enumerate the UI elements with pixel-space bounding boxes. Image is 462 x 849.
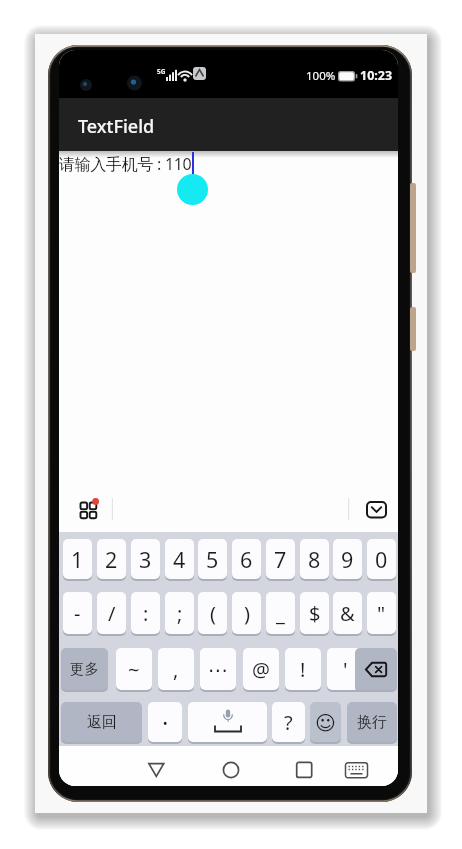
- button[interactable]: 3: [131, 539, 160, 579]
- button[interactable]: [177, 174, 208, 205]
- button[interactable]: (: [198, 592, 227, 634]
- staticText: @: [252, 656, 270, 683]
- staticText: 8: [308, 545, 321, 574]
- staticText: _: [276, 600, 285, 627]
- button[interactable]: 8: [300, 539, 329, 579]
- button[interactable]: /: [97, 592, 126, 634]
- staticText: 5: [206, 545, 219, 574]
- button[interactable]: 9: [333, 539, 362, 579]
- button[interactable]: 0: [367, 539, 396, 579]
- button[interactable]: 换行: [347, 702, 397, 742]
- staticText: 6: [240, 545, 253, 574]
- button[interactable]: [211, 750, 251, 786]
- button[interactable]: _: [266, 592, 295, 634]
- staticText: (: [210, 600, 216, 627]
- staticText: 返回: [87, 713, 117, 732]
- button[interactable]: ☺: [310, 702, 341, 742]
- staticText: 0: [375, 545, 388, 574]
- staticText: ⋯: [208, 658, 228, 681]
- button[interactable]: 1: [63, 539, 92, 579]
- staticText: ☺: [315, 711, 336, 734]
- button[interactable]: 4: [165, 539, 194, 579]
- button[interactable]: !: [285, 648, 321, 690]
- staticText: ~: [128, 656, 140, 683]
- staticText: ?: [284, 709, 293, 736]
- staticText: 1: [71, 545, 84, 574]
- button[interactable]: [188, 702, 267, 742]
- staticText: -: [74, 600, 81, 627]
- button[interactable]: &: [333, 592, 362, 634]
- staticText: 3: [139, 545, 152, 574]
- button[interactable]: ': [327, 648, 363, 690]
- staticText: 5G: [157, 67, 166, 76]
- staticText: 4: [173, 545, 186, 574]
- staticText: 9: [341, 545, 354, 574]
- staticText: :: [143, 600, 149, 627]
- staticText: 10:23: [360, 67, 393, 84]
- staticText: ": [377, 600, 386, 627]
- staticText: 100%: [306, 68, 336, 84]
- button[interactable]: -: [63, 592, 92, 634]
- button[interactable]: @: [243, 648, 279, 690]
- staticText: ,: [173, 656, 179, 683]
- staticText: 7: [274, 545, 287, 574]
- button[interactable]: ·: [148, 702, 182, 742]
- button[interactable]: ): [232, 592, 261, 634]
- button[interactable]: [69, 492, 111, 532]
- button[interactable]: [136, 750, 176, 786]
- staticText: 换行: [357, 713, 387, 732]
- button[interactable]: 返回: [61, 702, 142, 742]
- staticText: ·: [162, 706, 169, 739]
- staticText: /: [108, 600, 116, 627]
- staticText: &: [340, 600, 355, 627]
- button[interactable]: ~: [116, 648, 152, 690]
- button[interactable]: ,: [158, 648, 194, 690]
- button[interactable]: :: [131, 592, 160, 634]
- button[interactable]: [284, 750, 324, 786]
- staticText: ): [244, 600, 250, 627]
- button[interactable]: 7: [266, 539, 295, 579]
- button[interactable]: ?: [272, 702, 305, 742]
- staticText: 请输入手机号 : 110: [59, 153, 192, 175]
- staticText: 2: [105, 545, 118, 574]
- button[interactable]: [355, 648, 397, 690]
- button[interactable]: 6: [232, 539, 261, 579]
- button[interactable]: $: [300, 592, 329, 634]
- staticText: !: [300, 656, 306, 683]
- button[interactable]: [345, 750, 389, 786]
- button[interactable]: 更多: [61, 648, 108, 690]
- staticText: ;: [177, 600, 183, 627]
- staticText: 更多: [70, 660, 99, 678]
- staticText: $: [309, 600, 321, 627]
- staticText: TextField: [78, 114, 155, 139]
- button[interactable]: ;: [165, 592, 194, 634]
- button[interactable]: 2: [97, 539, 126, 579]
- staticText: ': [343, 656, 348, 683]
- button[interactable]: ": [367, 592, 396, 634]
- button[interactable]: [357, 492, 397, 532]
- button[interactable]: ⋯: [200, 648, 236, 690]
- button[interactable]: 5: [198, 539, 227, 579]
